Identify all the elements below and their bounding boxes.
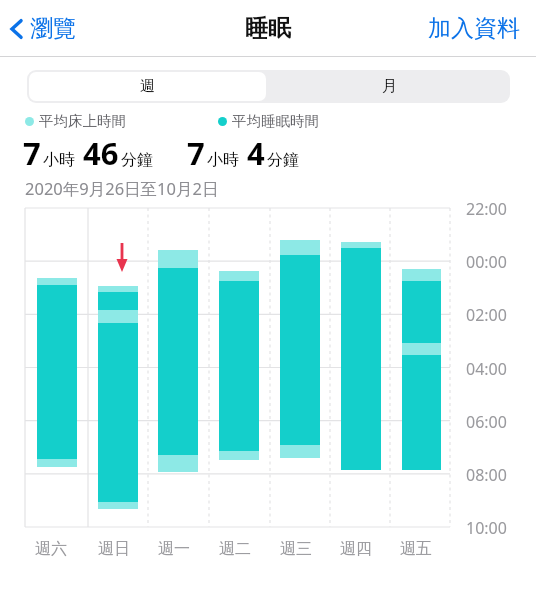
staticText: 週二 (219, 539, 251, 559)
staticText: 加入資料 (428, 14, 520, 43)
button[interactable]: Back (0, 6, 90, 51)
staticText: 10:00 (466, 517, 507, 539)
staticText: 02:00 (466, 304, 507, 326)
staticText: 2020年9月26日至10月2日 (25, 177, 219, 200)
other: Back (10, 18, 23, 40)
button[interactable]: 月 (268, 70, 510, 103)
staticText: 週日 (98, 539, 130, 559)
staticText: 04:00 (466, 358, 507, 380)
staticText: 7 (23, 132, 41, 174)
staticText: 週六 (35, 539, 67, 559)
staticText: 平均床上時間 (39, 112, 126, 130)
staticText: 4 (247, 132, 265, 174)
staticText: 睡眠 (245, 14, 291, 43)
button[interactable]: 週四 (338, 537, 374, 561)
staticText: 分鐘 (121, 150, 153, 170)
staticText: 週五 (400, 539, 432, 559)
staticText: 週三 (280, 539, 312, 559)
button[interactable]: 週五 (398, 537, 434, 561)
button[interactable]: 週一 (156, 537, 192, 561)
staticText: 00:00 (466, 251, 507, 273)
staticText: 平均睡眠時間 (232, 112, 319, 130)
button[interactable]: 週三 (278, 537, 314, 561)
button[interactable]: 週六 (33, 537, 69, 561)
button[interactable]: 加入資料 (412, 4, 536, 53)
staticText: 週四 (340, 539, 372, 559)
staticText: 小時 (43, 150, 75, 170)
staticText: 月 (382, 77, 397, 96)
staticText: 22:00 (466, 198, 507, 220)
button[interactable]: 週二 (217, 537, 253, 561)
staticText: 分鐘 (267, 150, 299, 170)
staticText: 7 (187, 132, 205, 174)
staticText: 小時 (207, 150, 239, 170)
staticText: 瀏覽 (30, 14, 76, 43)
staticText: 06:00 (466, 411, 507, 433)
staticText: 46 (83, 132, 119, 174)
button[interactable]: 週日 (96, 537, 132, 561)
staticText: 週 (140, 77, 155, 96)
button[interactable]: 週 (29, 72, 266, 101)
staticText: 08:00 (466, 464, 507, 486)
staticText: 週一 (158, 539, 190, 559)
